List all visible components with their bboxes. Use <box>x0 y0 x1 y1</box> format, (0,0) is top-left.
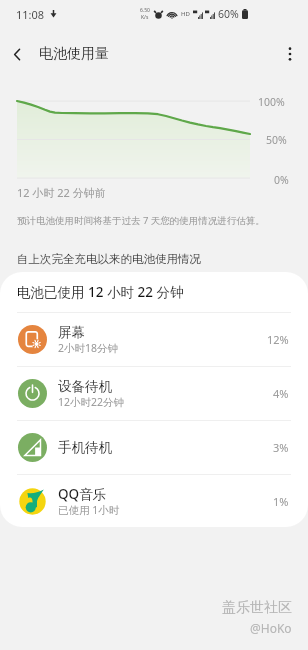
staticText: 1% <box>273 494 289 509</box>
staticText: 4% <box>273 386 289 401</box>
button[interactable]: 设备待机 <box>0 367 308 420</box>
staticText: 电池已使用 12 小时 22 分钟 <box>17 283 184 301</box>
staticText: 12小时22分钟 <box>58 395 125 409</box>
staticText: 100% <box>258 95 285 109</box>
staticText: 电池使用量 <box>39 45 109 63</box>
staticText: 屏幕 <box>58 324 85 341</box>
button[interactable]: 屏幕 <box>0 313 308 366</box>
staticText: HD <box>181 10 190 18</box>
staticText: 12 小时 22 分钟前 <box>17 185 106 200</box>
staticText: 预计电池使用时间将基于过去 7 天您的使用情况进行估算。 <box>17 214 265 227</box>
staticText: 6.50 <box>140 7 150 14</box>
staticText: 2小时18分钟 <box>58 341 119 355</box>
staticText: 50% <box>266 133 287 147</box>
staticText: @HoKo <box>250 620 292 636</box>
staticText: 设备待机 <box>58 378 112 395</box>
staticText: 11:08 <box>16 7 45 22</box>
button[interactable]: More options <box>272 30 308 78</box>
button[interactable]: 手机待机 <box>0 421 308 474</box>
staticText: 12% <box>267 332 289 347</box>
staticText: 3% <box>273 440 289 455</box>
staticText: 手机待机 <box>58 439 112 456</box>
staticText: 0% <box>274 173 289 187</box>
staticText: 自上次完全充电以来的电池使用情况 <box>17 252 201 266</box>
button[interactable]: QQ音乐 <box>0 475 308 527</box>
staticText: 60% <box>218 7 239 21</box>
staticText: 已使用 1小时 <box>58 503 120 517</box>
button[interactable]: Back <box>0 30 34 78</box>
staticText: QQ音乐 <box>58 485 107 503</box>
staticText: K/s <box>141 14 149 21</box>
staticText: 盖乐世社区 <box>222 599 292 617</box>
